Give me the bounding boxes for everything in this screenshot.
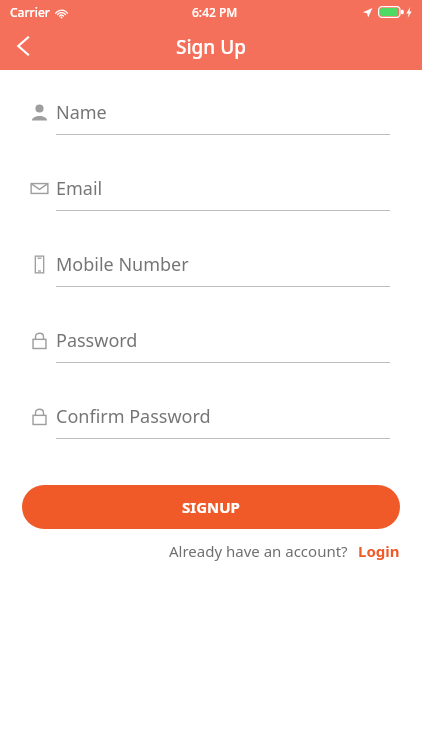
button[interactable]: Password xyxy=(22,318,390,394)
button[interactable]: Back xyxy=(0,22,48,70)
staticText: Password xyxy=(56,328,138,353)
button[interactable]: Mobile Number xyxy=(22,242,390,318)
button[interactable]: Email xyxy=(22,166,390,242)
staticText: SIGNUP xyxy=(182,497,240,517)
staticText: Name xyxy=(56,100,107,125)
staticText: Login xyxy=(358,541,400,561)
staticText: Sign Up xyxy=(176,34,247,60)
staticText: Email xyxy=(56,176,103,201)
staticText: Carrier xyxy=(10,4,50,20)
staticText: Mobile Number xyxy=(56,252,189,277)
staticText: 6:42 PM xyxy=(192,4,238,20)
button[interactable]: Name xyxy=(22,90,390,166)
button[interactable]: SIGNUP xyxy=(22,485,400,529)
button[interactable]: Login xyxy=(358,541,400,561)
staticText: Already have an account? xyxy=(169,541,348,561)
button[interactable]: Confirm Password xyxy=(22,394,390,470)
staticText: Confirm Password xyxy=(56,404,211,429)
